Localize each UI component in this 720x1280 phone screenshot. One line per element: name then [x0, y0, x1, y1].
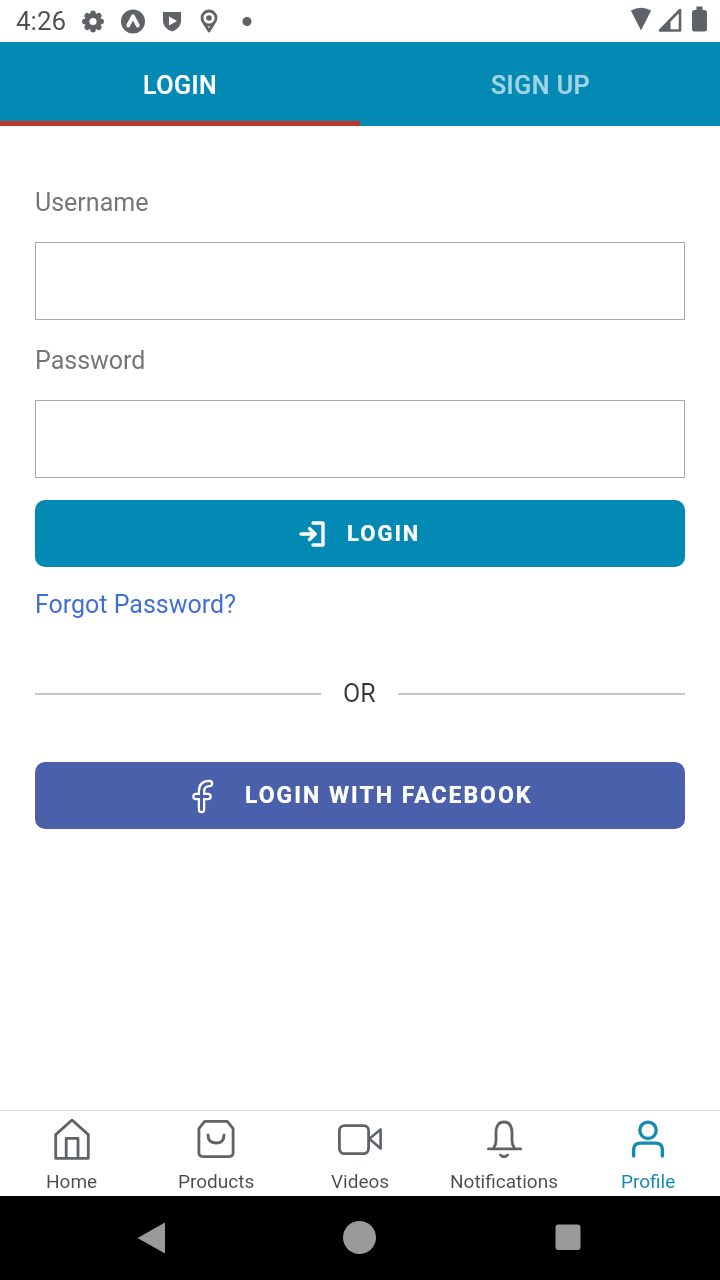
staticText: OR	[343, 679, 376, 708]
button[interactable]: Forgot Password?	[35, 590, 236, 619]
staticText: Home	[46, 1170, 98, 1192]
button[interactable]	[111, 1198, 191, 1278]
button[interactable]	[35, 400, 685, 478]
button[interactable]: LOGIN WITH FACEBOOK	[35, 762, 685, 829]
button[interactable]: SIGN UP	[360, 42, 720, 126]
button[interactable]: Home	[0, 1111, 144, 1196]
staticText: LOGIN	[347, 521, 421, 547]
button[interactable]: LOGIN	[35, 500, 685, 567]
staticText: Username	[35, 188, 149, 217]
staticText: Password	[35, 346, 146, 375]
staticText: LOGIN	[143, 71, 218, 100]
button[interactable]	[320, 1198, 400, 1278]
staticText: SIGN UP	[491, 71, 590, 100]
button[interactable]: Products	[144, 1111, 288, 1196]
staticText: 4:26	[16, 6, 67, 36]
button[interactable]: Profile	[576, 1111, 720, 1196]
staticText: LOGIN WITH FACEBOOK	[245, 782, 533, 809]
button[interactable]: Videos	[288, 1111, 432, 1196]
staticText: Videos	[331, 1170, 390, 1192]
button[interactable]: LOGIN	[0, 42, 360, 126]
button[interactable]	[35, 242, 685, 320]
staticText: Notifications	[450, 1170, 559, 1192]
staticText: Profile	[621, 1170, 676, 1192]
button[interactable]	[528, 1198, 608, 1278]
staticText: Products	[178, 1170, 255, 1192]
button[interactable]: Notifications	[432, 1111, 576, 1196]
